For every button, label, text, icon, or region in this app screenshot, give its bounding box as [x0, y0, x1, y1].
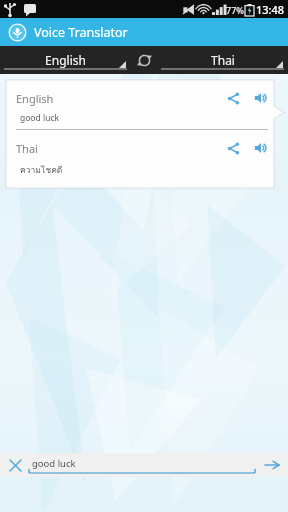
- staticText: English: [16, 91, 54, 106]
- button[interactable]: Share English: [222, 87, 244, 109]
- staticText: Voice Translator: [34, 24, 128, 41]
- staticText: good luck: [20, 112, 60, 124]
- button[interactable]: Share Thai: [222, 137, 244, 159]
- staticText: 13:48: [256, 2, 285, 17]
- button[interactable]: App icon: [8, 23, 27, 42]
- staticText: ความโชคดี: [20, 163, 63, 177]
- button[interactable]: Translate: [261, 454, 283, 476]
- staticText: Thai: [16, 141, 38, 156]
- button[interactable]: good luck: [29, 455, 255, 475]
- button[interactable]: Speak English: [250, 87, 272, 109]
- button[interactable]: Clear text: [5, 455, 25, 475]
- button[interactable]: Thai: [161, 49, 284, 71]
- staticText: Thai: [211, 52, 235, 68]
- button[interactable]: Swap languages: [127, 46, 161, 74]
- staticText: 77%: [226, 4, 244, 16]
- staticText: good luck: [32, 457, 76, 470]
- button[interactable]: Speak Thai: [250, 137, 272, 159]
- button[interactable]: English: [4, 49, 127, 71]
- staticText: English: [45, 52, 86, 68]
